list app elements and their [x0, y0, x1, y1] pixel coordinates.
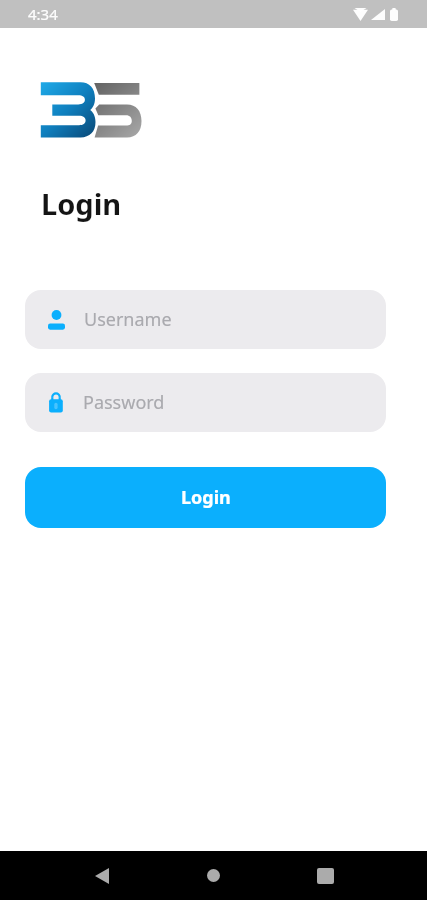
button[interactable]: Username [25, 290, 386, 349]
staticText: Login [41, 184, 122, 223]
button[interactable]: Password [25, 373, 386, 432]
staticText: 4:34 [28, 4, 58, 24]
button[interactable]: Recent apps [297, 851, 354, 900]
staticText: Password [83, 390, 165, 415]
staticText: Username [84, 307, 172, 332]
button[interactable]: Login [25, 467, 386, 528]
button[interactable]: Back [73, 851, 130, 900]
button[interactable]: Home [185, 851, 242, 900]
staticText: Login [181, 485, 231, 510]
